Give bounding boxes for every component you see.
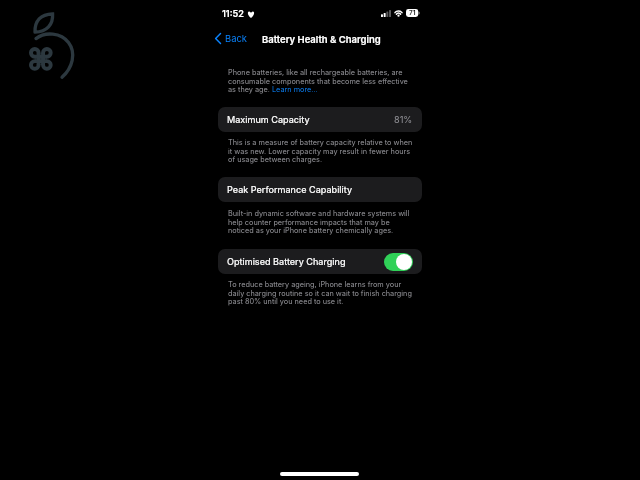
staticText: Battery Health & Charging — [262, 34, 381, 45]
staticText: 81% — [394, 114, 413, 125]
staticText: Built-in dynamic software and hardware s… — [228, 209, 415, 234]
staticText: Maximum Capacity — [227, 114, 310, 125]
staticText: Back — [225, 33, 247, 44]
staticText: To reduce battery ageing, iPhone learns … — [228, 280, 415, 305]
button[interactable]: Optimised Battery Charging — [218, 249, 422, 274]
staticText: Phone batteries, like all rechargeable b… — [228, 68, 415, 93]
button[interactable]: Peak Performance Capability — [218, 177, 422, 202]
staticText: Peak Performance Capability — [227, 184, 352, 195]
staticText: 71 — [409, 9, 416, 17]
button[interactable]: Optimised Battery Charging toggle, on — [384, 253, 413, 271]
button[interactable]: Maximum Capacity — [218, 107, 422, 132]
staticText: This is a measure of battery capacity re… — [228, 138, 415, 163]
button[interactable]: Back — [214, 31, 248, 46]
staticText: 11:52 — [222, 8, 244, 19]
staticText: Optimised Battery Charging — [227, 256, 346, 267]
